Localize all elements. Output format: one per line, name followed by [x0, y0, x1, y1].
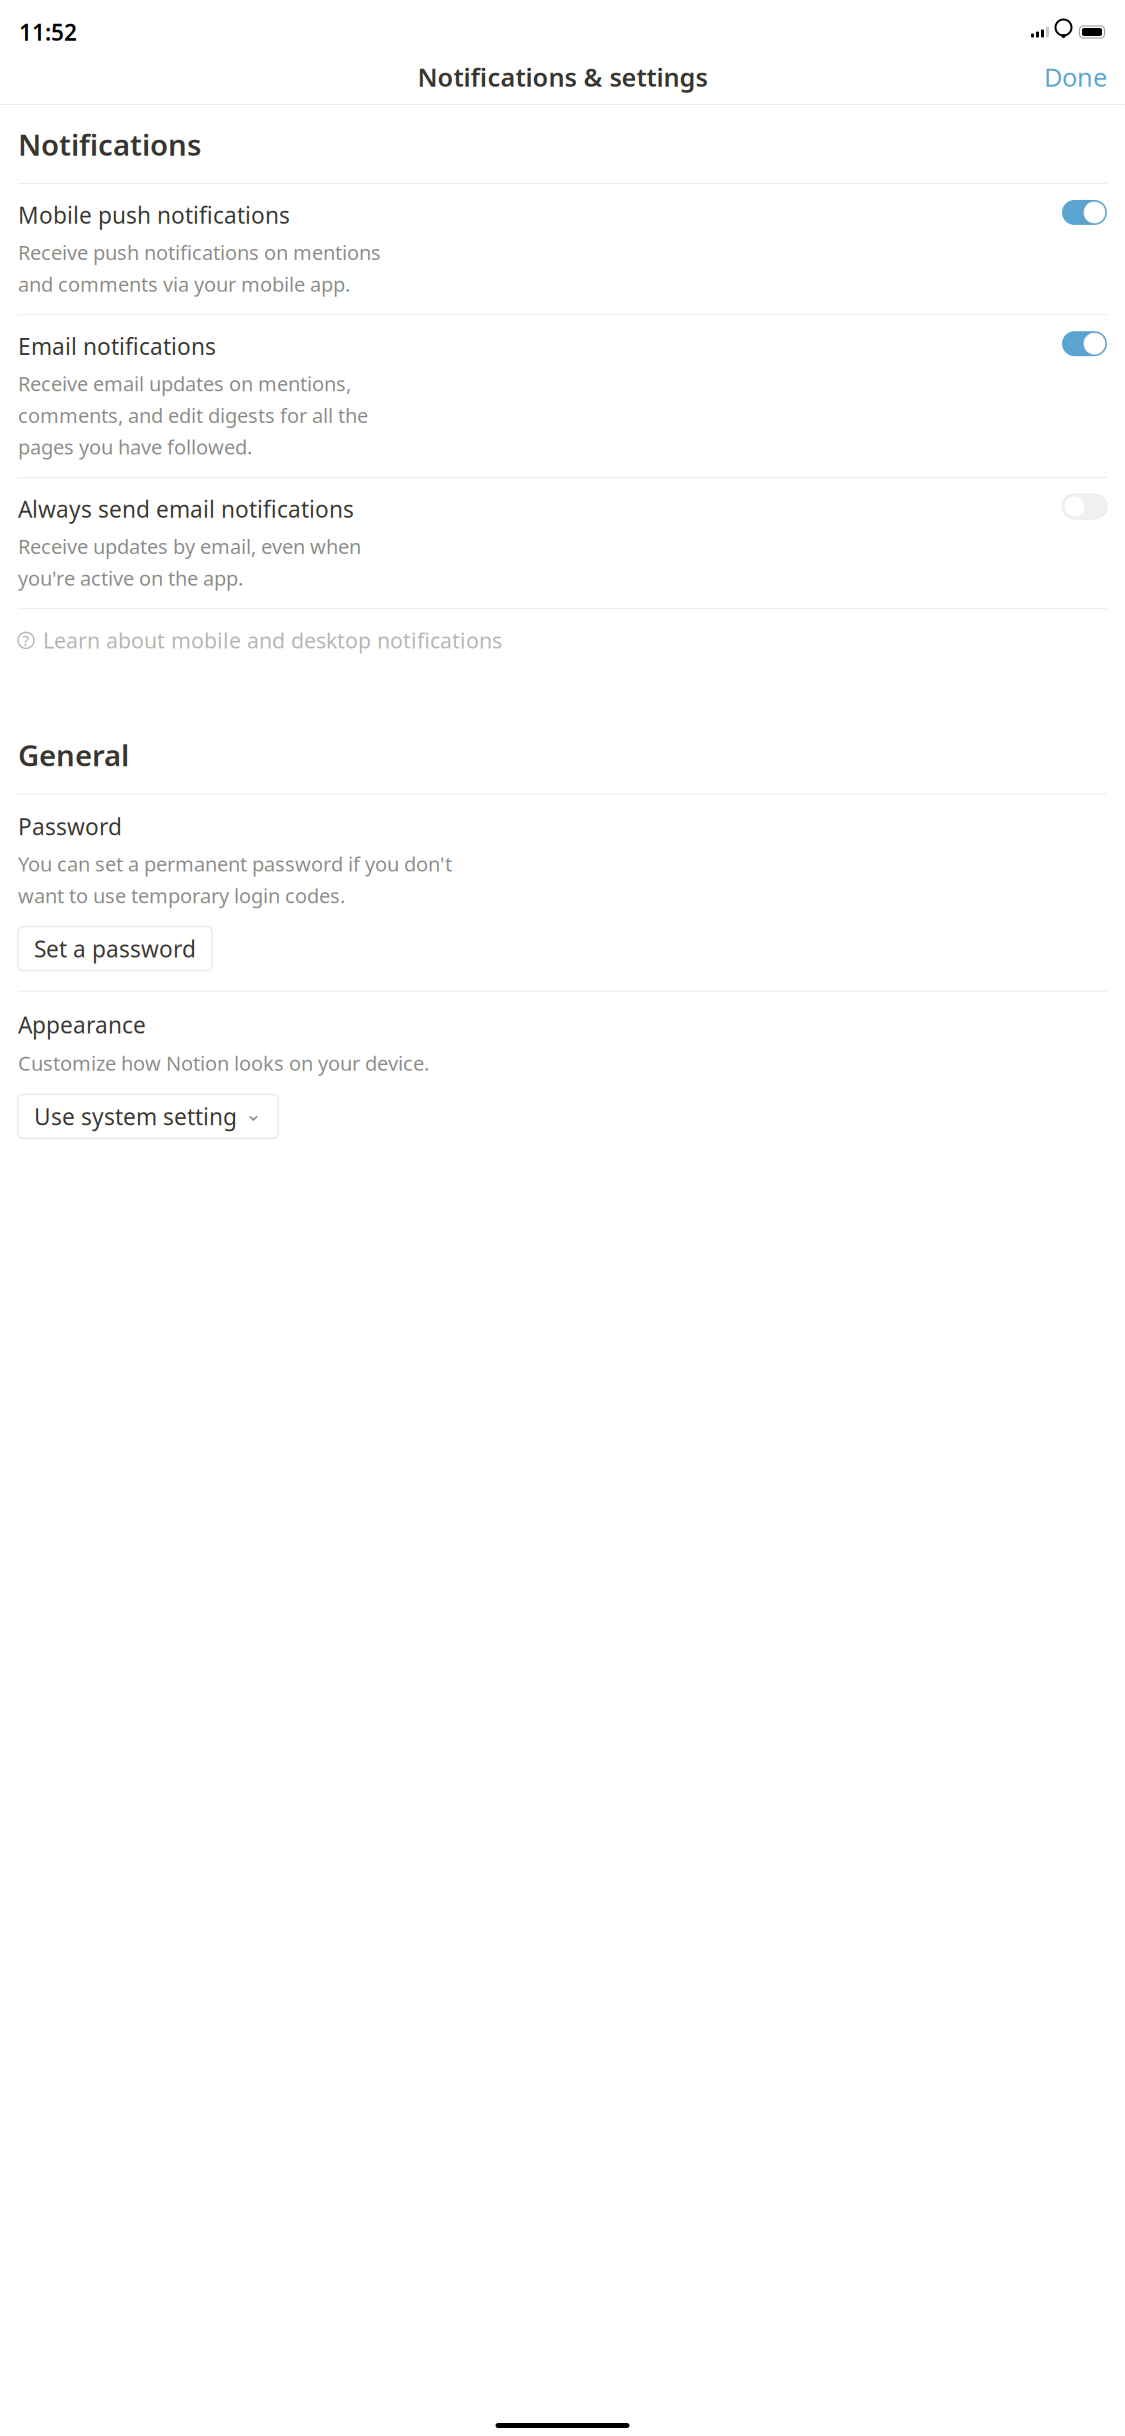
staticText: Customize how Notion looks on your devic… — [18, 1050, 429, 1076]
button[interactable]: Mobile push notifications — [0, 184, 1125, 314]
staticText: Set a password — [34, 934, 196, 964]
staticText: You can set a permanent password if you … — [18, 851, 452, 877]
staticText: Mobile push notifications — [18, 200, 290, 230]
staticText: Email notifications — [18, 331, 216, 361]
staticText: Always send email notifications — [18, 494, 354, 524]
button[interactable]: Email notifications — [0, 315, 1125, 477]
staticText: Done — [1044, 60, 1107, 94]
staticText: Use system setting — [34, 1101, 237, 1131]
staticText: Notifications — [18, 125, 201, 164]
staticText: Notifications & settings — [417, 60, 707, 94]
button[interactable]: Always send email notifications — [0, 478, 1125, 608]
button[interactable]: Done — [1026, 50, 1125, 104]
staticText: and comments via your mobile app. — [18, 271, 350, 297]
staticText: comments, and edit digests for all the — [18, 402, 368, 428]
staticText: General — [18, 735, 129, 774]
staticText: 11:52 — [19, 17, 77, 47]
staticText: you're active on the app. — [18, 565, 243, 591]
staticText: ⌄ — [245, 1102, 262, 1125]
button[interactable]: ? — [0, 609, 1125, 671]
staticText: Receive updates by email, even when — [18, 533, 361, 560]
staticText: want to use temporary login codes. — [18, 882, 345, 909]
button[interactable]: Set a password — [18, 927, 212, 971]
staticText: Receive email updates on mentions, — [18, 370, 351, 397]
staticText: Receive push notifications on mentions — [18, 239, 381, 266]
button[interactable]: Use system setting — [18, 1094, 278, 1138]
staticText: ? — [22, 631, 29, 650]
staticText: Learn about mobile and desktop notificat… — [43, 626, 502, 654]
staticText: Appearance — [18, 1010, 146, 1040]
staticText: Password — [18, 811, 122, 842]
staticText: pages you have followed. — [18, 433, 252, 460]
